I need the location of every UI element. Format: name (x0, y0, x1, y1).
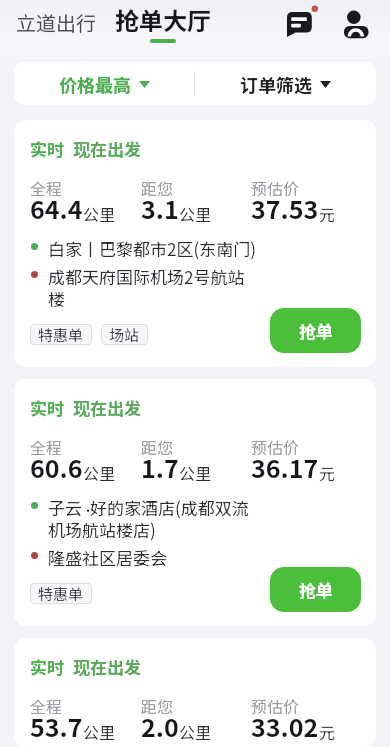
staticText: 距您 (141, 176, 174, 199)
staticText: 距您 (141, 694, 174, 717)
staticText: 实时 (30, 395, 64, 420)
staticText: 64.4 (30, 190, 83, 226)
button[interactable]: 实时 (14, 379, 376, 626)
staticText: 全程 (30, 694, 63, 717)
staticText: 抢单 (299, 577, 333, 602)
staticText: 成都天府国际机场2号航站楼 (48, 264, 257, 311)
staticText: 公里 (179, 461, 212, 484)
staticText: 元 (319, 461, 336, 484)
staticText: 抢单大厅 (115, 2, 211, 37)
button[interactable]: 特惠单 (38, 324, 84, 345)
staticText: 特惠单 (38, 324, 84, 345)
staticText: 3.1 (141, 190, 179, 226)
staticText: 公里 (83, 720, 116, 743)
staticText: 实时 (30, 136, 64, 161)
staticText: 公里 (179, 720, 212, 743)
button[interactable]: 抢单 (270, 308, 361, 353)
staticText: 预估价 (251, 176, 300, 199)
staticText: 元 (319, 202, 336, 225)
staticText: 抢单 (299, 318, 333, 343)
button[interactable]: Messages (287, 8, 317, 38)
button[interactable]: 抢单 (270, 567, 361, 612)
button[interactable]: 场站 (109, 324, 140, 345)
staticText: 元 (319, 720, 336, 743)
button[interactable]: 实时 (14, 638, 376, 747)
button[interactable]: 实时 (14, 120, 376, 367)
staticText: 53.7 (30, 708, 83, 744)
staticText: 实时 (30, 654, 64, 679)
staticText: 子云·好的家酒店(成都双流机场航站楼店) (48, 495, 257, 542)
staticText: 60.6 (30, 449, 83, 485)
button[interactable]: 价格最高 (14, 62, 194, 105)
staticText: 现在出发 (73, 136, 141, 161)
staticText: 隆盛社区居委会 (48, 545, 167, 570)
staticText: 订单筛选 (240, 71, 312, 97)
staticText: 公里 (83, 202, 116, 225)
staticText: 白家丨巴黎都市2区(东南门) (48, 236, 256, 261)
staticText: 现在出发 (73, 395, 141, 420)
staticText: 现在出发 (73, 654, 141, 679)
staticText: 距您 (141, 435, 174, 458)
button[interactable]: 特惠单 (38, 583, 84, 604)
staticText: 1.7 (141, 449, 179, 485)
staticText: 立道出行 (16, 8, 96, 37)
button[interactable]: 订单筛选 (195, 62, 376, 105)
staticText: 预估价 (251, 694, 300, 717)
staticText: 全程 (30, 176, 63, 199)
staticText: 公里 (83, 461, 116, 484)
button[interactable]: 立道出行 (16, 12, 96, 32)
button[interactable]: Profile (344, 6, 370, 32)
staticText: 36.17 (251, 449, 319, 485)
staticText: 33.02 (251, 708, 319, 744)
staticText: 预估价 (251, 435, 300, 458)
staticText: 特惠单 (38, 583, 84, 604)
staticText: 全程 (30, 435, 63, 458)
staticText: 场站 (109, 324, 140, 345)
staticText: 公里 (179, 202, 212, 225)
staticText: 37.53 (251, 190, 319, 226)
button[interactable]: 抢单大厅 (115, 0, 211, 43)
staticText: 价格最高 (59, 71, 131, 97)
staticText: 2.0 (141, 708, 179, 744)
